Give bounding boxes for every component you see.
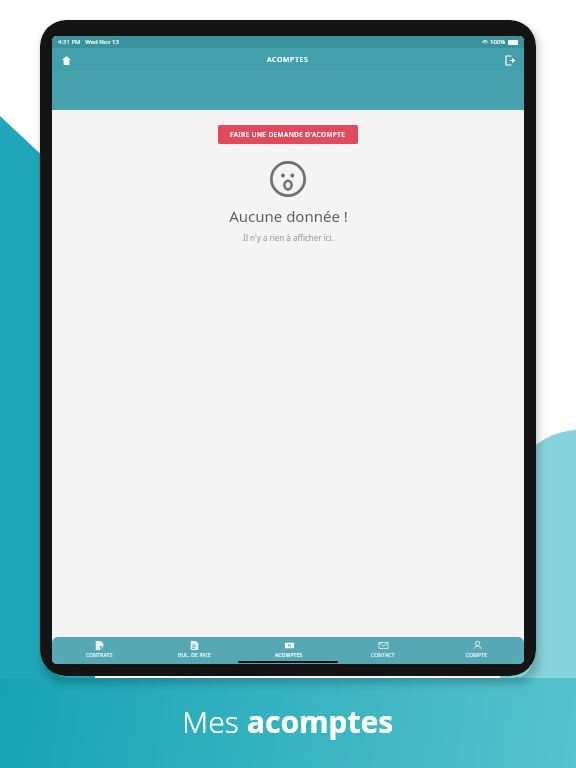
button[interactable]: CONTRATS <box>52 637 147 664</box>
staticText: BUL. DE PAIE <box>178 652 211 659</box>
staticText: COMPTE <box>466 652 488 659</box>
button[interactable]: Log out <box>502 52 518 68</box>
staticText: CONTRATS <box>86 652 113 659</box>
staticText: Mes <box>182 701 247 742</box>
button[interactable]: Home <box>58 52 74 68</box>
staticText: 100% <box>490 38 506 46</box>
staticText: FAIRE UNE DEMANDE D'ACOMPTE <box>230 130 346 139</box>
button[interactable]: FAIRE UNE DEMANDE D'ACOMPTE <box>218 125 358 144</box>
staticText: acomptes <box>247 701 394 742</box>
button[interactable]: BUL. DE PAIE <box>147 637 242 664</box>
button[interactable]: COMPTE <box>430 637 524 664</box>
staticText: 4:31 PM Wed Nov 13 <box>58 38 119 46</box>
staticText: CONTACT <box>371 652 395 659</box>
staticText: ACOMPTES <box>267 55 309 65</box>
staticText: Il n'y a rien à afficher ici. <box>243 232 334 243</box>
button[interactable]: ACOMPTES <box>242 637 336 664</box>
staticText: Aucune donnée ! <box>229 206 348 226</box>
button[interactable]: CONTACT <box>336 637 430 664</box>
staticText: ACOMPTES <box>275 652 303 659</box>
